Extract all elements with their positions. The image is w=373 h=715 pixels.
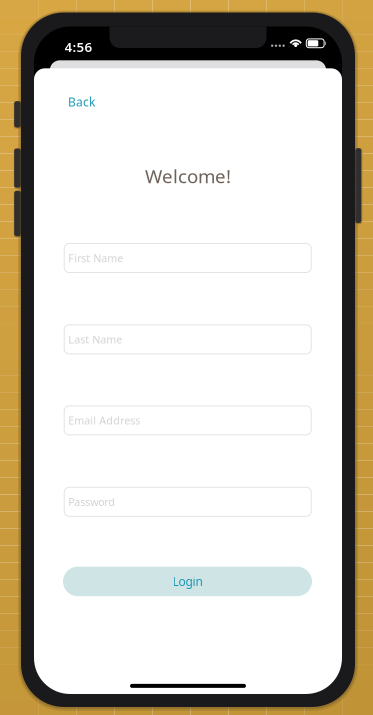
- button[interactable]: First Name: [64, 243, 311, 272]
- button[interactable]: Password: [64, 487, 311, 516]
- staticText: Email Address: [68, 413, 140, 427]
- staticText: Welcome!: [145, 164, 231, 188]
- staticText: 4:56: [64, 38, 92, 56]
- staticText: Login: [172, 573, 202, 589]
- button[interactable]: Back: [63, 89, 100, 115]
- staticText: First Name: [68, 251, 123, 265]
- staticText: Last Name: [68, 332, 122, 346]
- button[interactable]: Email Address: [64, 406, 311, 435]
- button[interactable]: Last Name: [64, 325, 311, 354]
- staticText: Back: [68, 94, 95, 110]
- button[interactable]: Login: [63, 567, 312, 596]
- staticText: Password: [68, 495, 115, 509]
